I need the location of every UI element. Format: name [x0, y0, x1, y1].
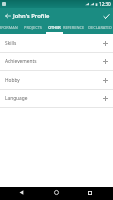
button[interactable]: Achievements	[0, 52, 113, 70]
staticText: PROJECTS	[24, 25, 42, 30]
button[interactable]: Hobby	[0, 71, 113, 89]
button[interactable]: Back	[2, 10, 13, 21]
staticText: Language	[5, 95, 28, 102]
staticText: REFERENCES	[62, 25, 85, 30]
button[interactable]: REFERENCES	[62, 23, 85, 34]
staticText: Skills	[5, 40, 17, 47]
button[interactable]: DECLARATION	[87, 23, 113, 34]
staticText: OTHER	[48, 25, 61, 30]
staticText: Hobby	[5, 77, 20, 84]
button[interactable]: PROJECTS	[22, 23, 43, 34]
button[interactable]: Back	[15, 186, 28, 199]
staticText: John's Profile	[13, 12, 50, 20]
button[interactable]: PERFORMANCE	[0, 23, 19, 34]
button[interactable]: Home	[50, 186, 63, 199]
staticText: 12:30	[99, 1, 111, 7]
staticText: DECLARATION	[87, 25, 113, 30]
button[interactable]: Skills	[0, 34, 113, 52]
button[interactable]: Done	[100, 10, 112, 22]
staticText: PERFORMANCE	[0, 25, 19, 30]
staticText: Achievements	[5, 58, 37, 65]
button[interactable]: Recent apps	[83, 186, 96, 199]
button[interactable]: Language	[0, 89, 113, 107]
button[interactable]: OTHER	[46, 23, 63, 34]
